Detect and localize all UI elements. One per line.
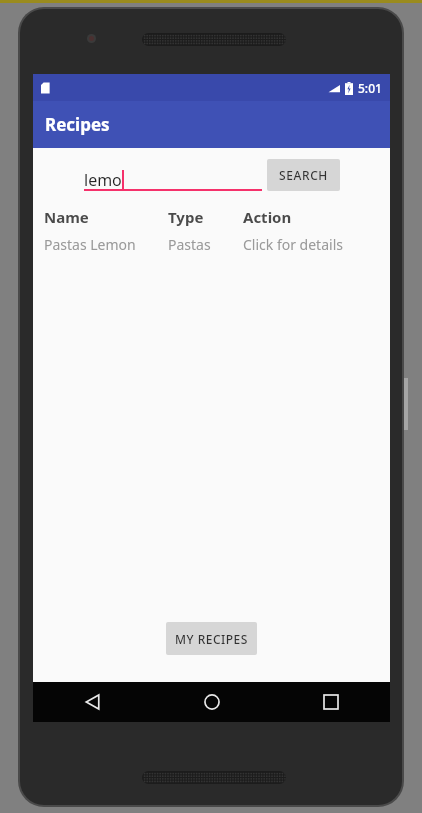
button[interactable]: Recent apps [271, 682, 390, 722]
staticText: Recipes [45, 113, 110, 136]
button[interactable]: Home [152, 682, 271, 722]
staticText: 5:01 [358, 80, 382, 96]
staticText: lemo [84, 169, 122, 191]
staticText: SEARCH [279, 167, 328, 183]
staticText: Type [168, 207, 243, 227]
button[interactable]: Back [33, 682, 152, 722]
staticText: Click for details [243, 235, 343, 254]
button[interactable]: Pastas Lemon [33, 235, 390, 254]
button[interactable]: MY RECIPES [166, 622, 257, 655]
staticText: MY RECIPES [175, 631, 248, 647]
staticText: Action [243, 207, 292, 227]
staticText: Pastas Lemon [44, 235, 168, 254]
staticText: Pastas [168, 235, 243, 254]
staticText: Name [44, 207, 168, 227]
button[interactable]: lemo [84, 159, 262, 191]
button[interactable]: SEARCH [267, 159, 340, 191]
